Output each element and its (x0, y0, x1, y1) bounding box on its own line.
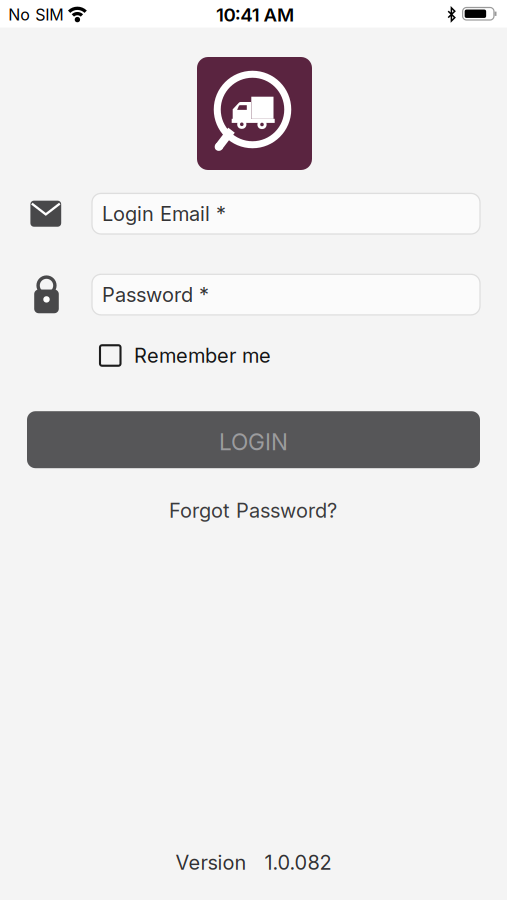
staticText: No SIM (8, 5, 63, 24)
button[interactable]: Login Email * (92, 193, 480, 234)
staticText: LOGIN (219, 428, 288, 455)
button[interactable]: LOGIN (27, 411, 480, 468)
button[interactable]: Password * (92, 274, 480, 315)
staticText: Password * (102, 283, 209, 306)
button[interactable]: Remember me (100, 344, 271, 367)
button[interactable]: Forgot Password? (169, 499, 337, 522)
staticText: Version 1.0.082 (175, 851, 331, 874)
staticText: Remember me (134, 344, 271, 367)
staticText: 10:41 AM (216, 4, 294, 26)
staticText: Forgot Password? (169, 499, 337, 522)
staticText: Login Email * (102, 202, 226, 225)
